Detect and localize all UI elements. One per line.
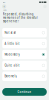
staticText: Repeated, disturbing memories of the str… (3, 12, 38, 23)
staticText: 9:41 (3, 1, 6, 3)
staticText: A little bit (4, 42, 19, 45)
button[interactable]: Back (2, 4, 6, 9)
staticText: Not at all (4, 31, 16, 34)
staticText: Moderately (4, 53, 19, 56)
staticText: Continue (17, 90, 31, 94)
button[interactable]: Extremely (2, 72, 47, 81)
staticText: Quite a bit (4, 64, 19, 67)
button[interactable]: Quite a bit (2, 61, 47, 70)
staticText: ‹ (4, 5, 5, 8)
button[interactable]: Close (43, 4, 47, 9)
staticText: Extremely (4, 74, 16, 78)
button[interactable]: Not at all (2, 28, 47, 37)
button[interactable]: Continue (2, 88, 47, 96)
button[interactable]: A little bit (2, 39, 47, 48)
staticText: 1 of 20 (3, 9, 7, 11)
button[interactable]: Moderately (2, 50, 47, 59)
